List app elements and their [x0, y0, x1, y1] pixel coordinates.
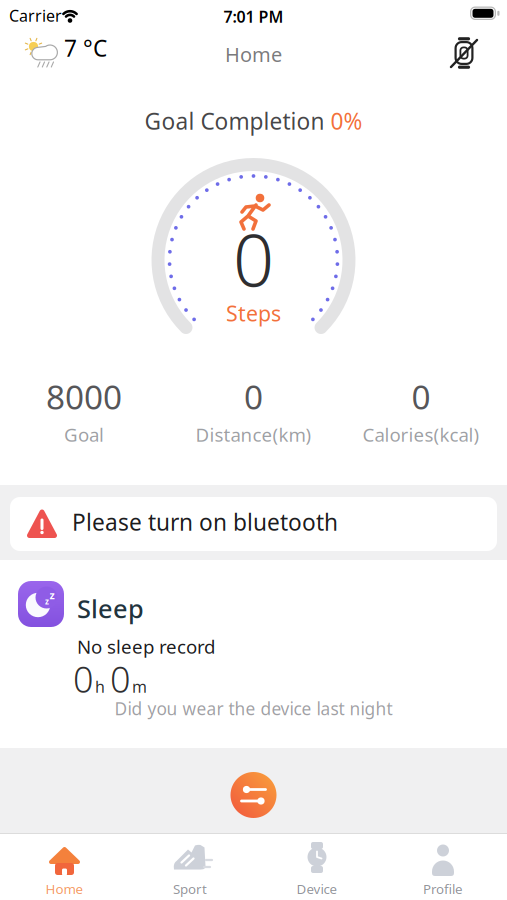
staticText: h: [95, 676, 109, 697]
staticText: m: [132, 676, 147, 697]
button[interactable]: Home: [14, 838, 114, 900]
staticText: Device: [296, 880, 337, 898]
staticText: 0: [110, 655, 131, 703]
button[interactable]: Sleep: [0, 560, 507, 748]
staticText: 0: [411, 374, 430, 419]
button[interactable]: Device: [267, 838, 367, 900]
staticText: Home: [45, 880, 83, 898]
staticText: 7:01 PM: [223, 6, 283, 27]
button[interactable]: Goal settings: [230, 772, 276, 818]
staticText: 0: [73, 655, 94, 703]
staticText: 0: [233, 211, 274, 307]
staticText: Profile: [423, 880, 463, 898]
button[interactable]: Device connection: [447, 33, 481, 73]
staticText: Please turn on bluetooth: [72, 507, 338, 537]
staticText: 0%: [330, 106, 362, 136]
staticText: Steps: [226, 299, 281, 327]
staticText: No sleep record: [77, 634, 215, 659]
button[interactable]: Please turn on bluetooth: [10, 497, 497, 551]
staticText: 8000: [46, 374, 122, 419]
button[interactable]: Sport: [140, 838, 240, 900]
staticText: Goal: [64, 422, 104, 447]
staticText: Distance(km): [195, 422, 311, 447]
staticText: z: [49, 588, 54, 602]
staticText: Goal Completion: [144, 106, 330, 136]
staticText: 0: [244, 374, 263, 419]
staticText: Sleep: [77, 591, 144, 625]
staticText: z: [45, 596, 49, 607]
staticText: Carrier: [9, 5, 62, 26]
staticText: Home: [225, 41, 282, 68]
staticText: Did you wear the device last night: [114, 697, 392, 720]
staticText: Sport: [173, 880, 207, 898]
staticText: 7 °C: [64, 33, 107, 63]
staticText: Calories(kcal): [362, 422, 479, 447]
button[interactable]: Profile: [393, 838, 493, 900]
